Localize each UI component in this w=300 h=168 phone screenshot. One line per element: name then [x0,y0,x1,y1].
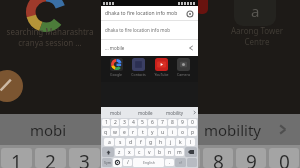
staticText: English [143,160,155,165]
button[interactable]: j [166,138,175,146]
staticText: x [128,149,131,156]
button[interactable]: 8 [168,119,177,126]
staticText: u [161,129,165,136]
button[interactable]: 5 [138,119,147,126]
staticText: dhaka to fire location info mob [105,10,185,17]
button[interactable]: 2 [111,119,119,126]
button[interactable]: English [133,158,164,167]
button[interactable]: w [111,128,119,136]
button[interactable]: dhaka to fire location info mob [101,21,198,39]
button[interactable]: d [126,138,135,146]
staticText: c [138,149,141,156]
button[interactable]: i [168,128,177,136]
button[interactable]: s [115,138,125,146]
button[interactable]: mobile [130,107,160,118]
button[interactable]: YouTube [151,58,171,77]
staticText: YouTube [154,72,169,77]
staticText: Google [110,72,122,77]
button[interactable]: n [165,148,174,156]
staticText: 9 [181,119,184,126]
button[interactable]: u [158,128,167,136]
staticText: o [181,129,185,136]
button[interactable]: 6 [148,119,157,126]
staticText: v [148,149,151,156]
button[interactable]: ... mobile [101,40,198,56]
button[interactable]: c [135,148,144,156]
button[interactable]: 1 [102,119,110,126]
button[interactable]: Search & browse [106,58,126,77]
staticText: 5 [141,119,144,126]
button[interactable]: h [156,138,165,146]
button[interactable]: m [175,148,184,156]
button[interactable]: l [186,138,195,146]
staticText: n [168,149,172,156]
staticText: / [127,159,129,166]
button[interactable]: a [104,138,114,146]
button[interactable]: Camera [173,58,193,77]
button[interactable]: More suggestions [190,107,198,118]
staticText: h [159,139,163,146]
staticText: w [113,129,117,136]
staticText: Aarong Tower Centre [220,25,294,47]
button[interactable]: q [102,128,110,136]
staticText: r [132,129,135,136]
button[interactable]: . [165,159,174,166]
button[interactable]: Voice search [185,9,194,18]
staticText: q [104,129,108,136]
button[interactable]: Contacts [128,58,148,77]
staticText: 9 [246,149,257,168]
button[interactable]: p [188,128,197,136]
staticText: Camera [177,72,190,77]
button[interactable]: r [129,128,137,136]
staticText: ... mobile [105,45,188,51]
staticText: 6 [151,119,154,126]
button[interactable]: t [138,128,147,136]
button[interactable]: e [120,128,128,136]
staticText: Sym [104,160,111,165]
button[interactable]: k [176,138,185,146]
button[interactable]: 0 [188,119,197,126]
button[interactable]: 9 [178,119,187,126]
staticText: l [190,139,192,146]
button[interactable]: dhaka to fire location info mob [101,6,198,20]
staticText: 1 [11,149,22,168]
staticText: 1 [105,119,108,126]
staticText: 3 [79,149,90,168]
staticText: dhaka to fire location info mob [105,27,170,33]
button[interactable]: g [146,138,155,146]
staticText: b [158,149,162,156]
staticText: 4 [132,119,135,126]
button[interactable]: mobility [160,107,190,118]
button[interactable]: Settings [113,158,122,167]
staticText: j [170,139,172,146]
staticText: 0 [279,149,290,168]
staticText: 0 [191,119,194,126]
staticText: d [129,139,133,146]
button[interactable]: v [145,148,154,156]
button[interactable]: mobi [101,107,130,118]
staticText: mobi [30,120,67,140]
button[interactable]: b [155,148,164,156]
staticText: f [140,139,142,146]
button[interactable]: 7 [158,119,167,126]
button[interactable]: y [148,128,157,136]
staticText: 8 [171,119,174,126]
button[interactable]: Backspace [185,147,197,157]
staticText: Contacts [131,72,146,77]
button[interactable]: / [123,159,132,166]
button[interactable]: Shift [102,147,114,157]
button[interactable]: z [115,148,124,156]
staticText: y [151,129,154,136]
staticText: s [119,139,122,146]
button[interactable]: 3 [120,119,128,126]
button[interactable]: o [178,128,187,136]
button[interactable]: 4 [129,119,137,126]
button[interactable]: ⏎ [175,158,186,167]
button[interactable]: Sym [102,158,112,167]
staticText: e [123,129,126,136]
staticText: t [142,129,144,136]
staticText: mobility [166,110,184,116]
button[interactable]: x [125,148,134,156]
button[interactable]: f [136,138,145,146]
